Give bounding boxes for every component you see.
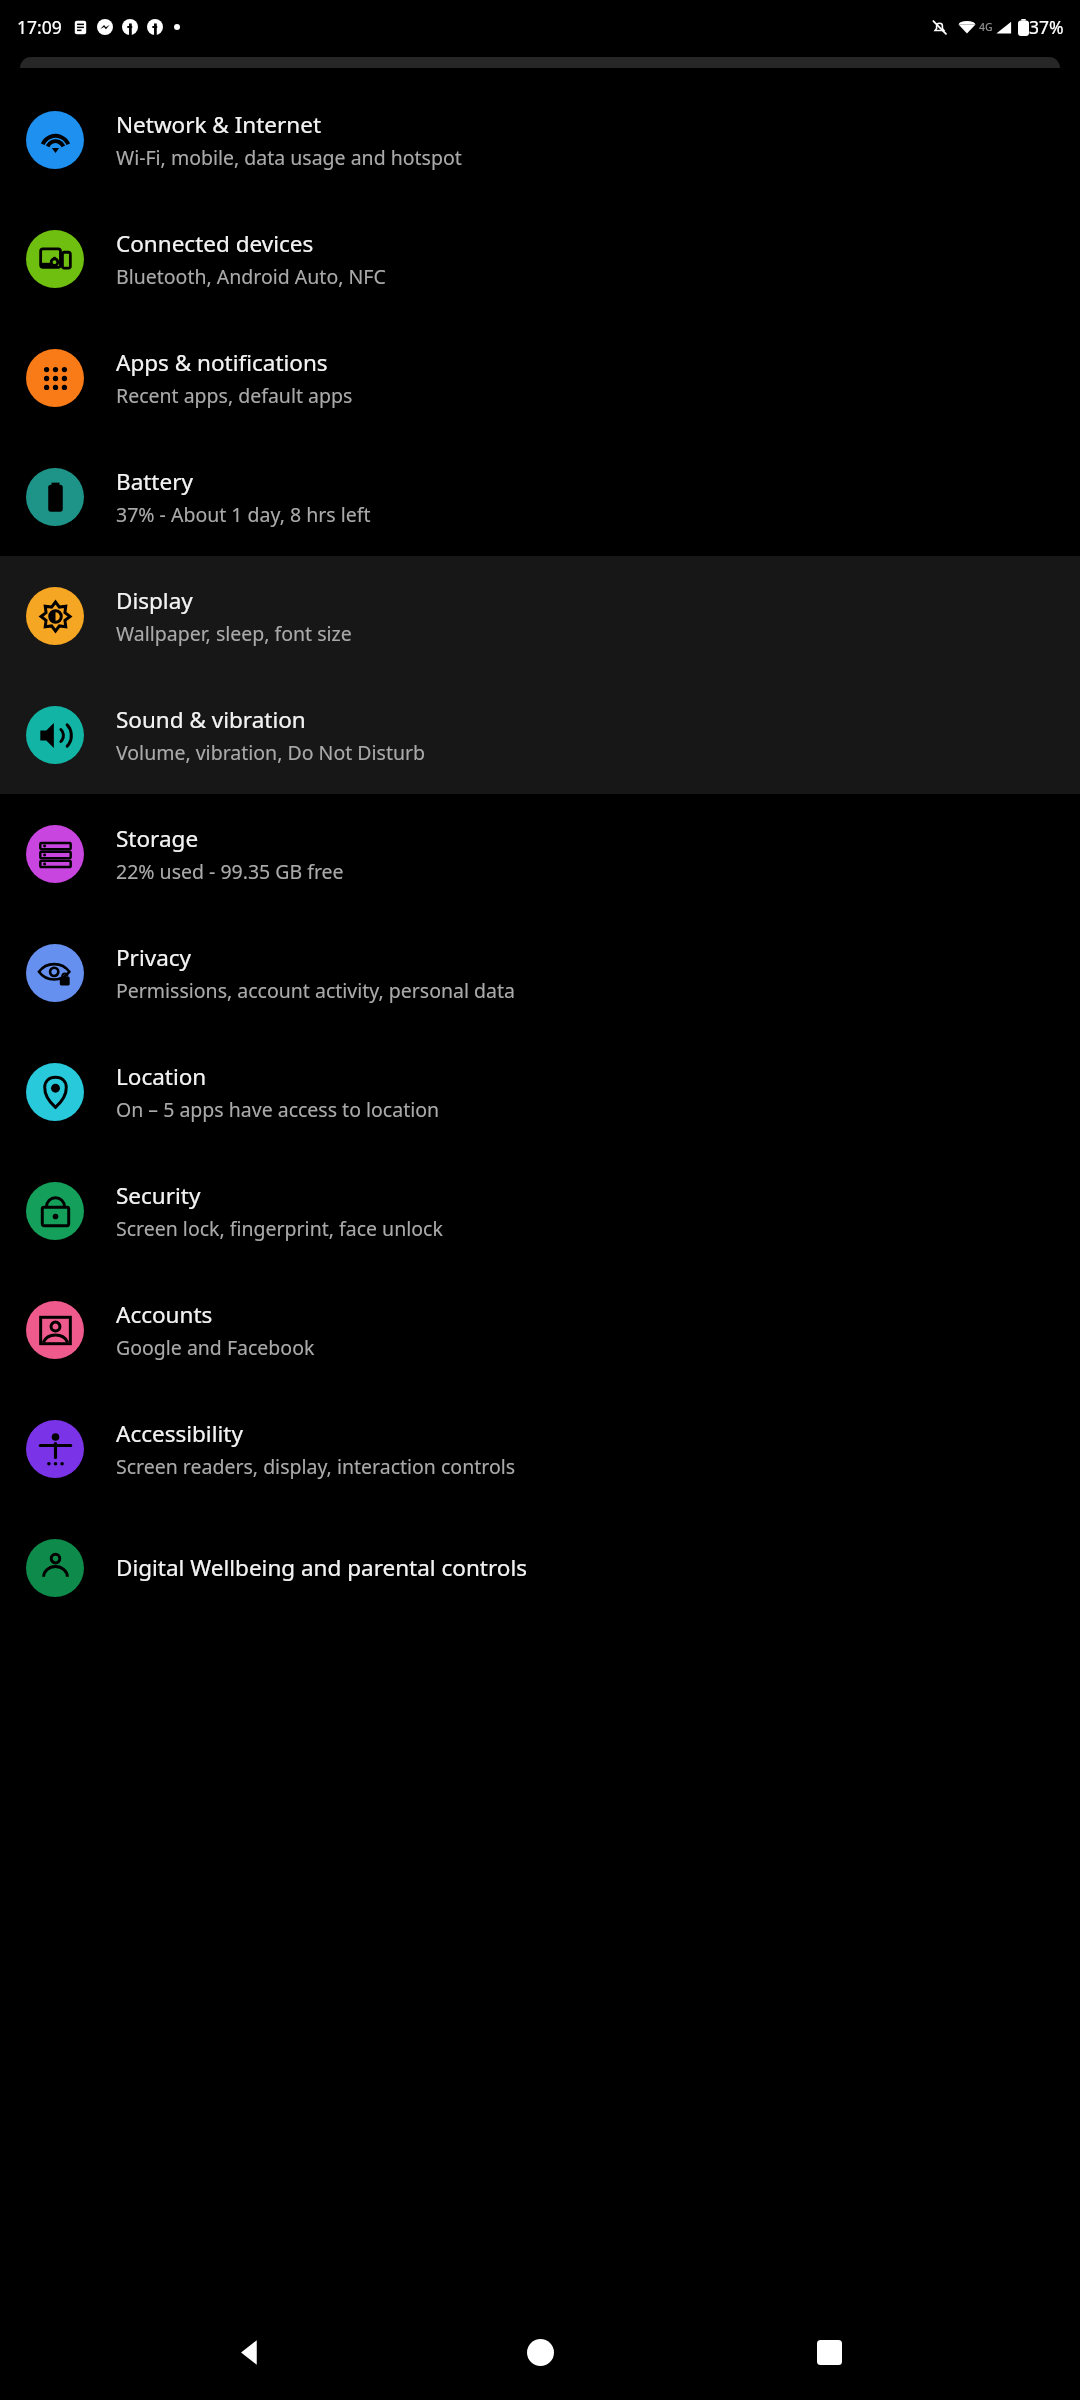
staticText: Location [116,1061,207,1092]
staticText: 4G [979,20,993,34]
button[interactable]: Security [0,1151,1080,1270]
button[interactable]: Privacy [0,913,1080,1032]
staticText: Google and Facebook [116,1334,315,1361]
staticText: Digital Wellbeing and parental controls [116,1552,527,1583]
staticText: Network & Internet [116,109,322,140]
button[interactable]: Connected devices [0,199,1080,318]
button[interactable]: Sound & vibration [0,675,1080,794]
staticText: Volume, vibration, Do Not Disturb [116,739,426,766]
staticText: Permissions, account activity, personal … [116,977,515,1004]
staticText: 37% - About 1 day, 8 hrs left [116,501,371,528]
button[interactable]: Home [502,2314,578,2390]
button[interactable]: Recent apps [791,2314,867,2390]
staticText: Recent apps, default apps [116,382,353,409]
staticText: Security [116,1180,201,1211]
staticText: Privacy [116,942,192,973]
button[interactable]: Digital Wellbeing and parental controls [0,1508,1080,1627]
button[interactable]: Battery [0,437,1080,556]
staticText: 22% used - 99.35 GB free [116,858,344,885]
staticText: Wallpaper, sleep, font size [116,620,352,647]
button[interactable]: Accounts [0,1270,1080,1389]
staticText: Accounts [116,1299,213,1330]
staticText: 17:09 [17,15,62,39]
staticText: Storage [116,823,199,854]
button[interactable]: Location [0,1032,1080,1151]
button[interactable]: Display [0,556,1080,675]
staticText: On – 5 apps have access to location [116,1096,440,1123]
button[interactable]: Storage [0,794,1080,913]
staticText: Display [116,585,193,616]
staticText: Screen readers, display, interaction con… [116,1453,516,1480]
button[interactable]: Back [213,2314,289,2390]
staticText: Sound & vibration [116,704,306,735]
button[interactable]: Apps & notifications [0,318,1080,437]
staticText: Battery [116,466,193,497]
button[interactable]: Network & Internet [0,80,1080,199]
staticText: 37% [1029,15,1064,39]
staticText: Apps & notifications [116,347,328,378]
staticText: Connected devices [116,228,314,259]
staticText: Bluetooth, Android Auto, NFC [116,263,386,290]
staticText: Accessibility [116,1418,243,1449]
staticText: Screen lock, fingerprint, face unlock [116,1215,443,1242]
button[interactable]: Accessibility [0,1389,1080,1508]
staticText: Wi-Fi, mobile, data usage and hotspot [116,144,462,171]
